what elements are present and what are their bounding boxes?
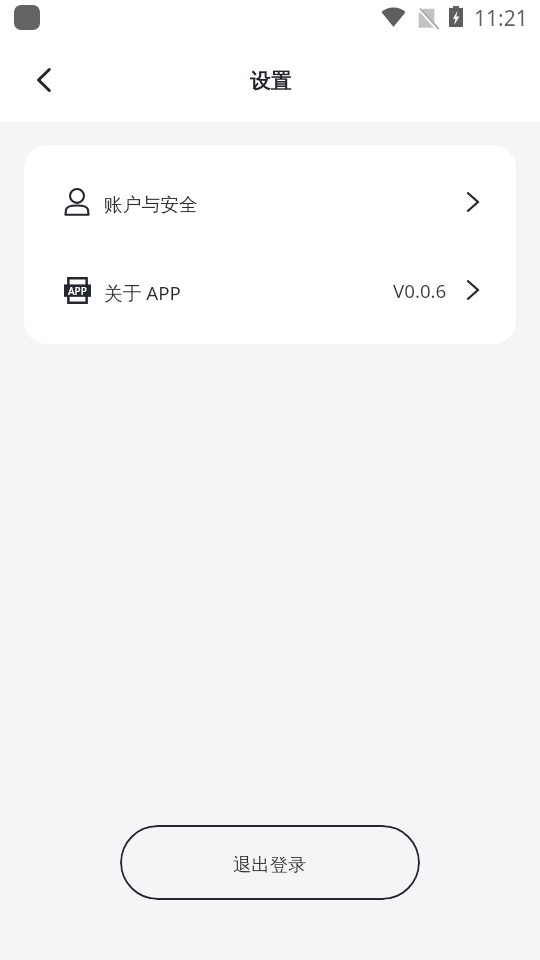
staticText: 11:21 [474,4,528,33]
staticText: V0.0.6 [393,278,447,303]
staticText: 账户与安全 [104,193,198,217]
button[interactable]: Back [15,52,71,108]
button[interactable]: 退出登录 [120,825,420,900]
staticText: APP [68,284,87,298]
staticText: 设置 [250,68,291,94]
button[interactable]: APP [24,246,516,334]
staticText: 退出登录 [233,853,307,876]
staticText: 关于 APP [104,280,181,306]
button[interactable]: 账户与安全 [24,158,516,246]
